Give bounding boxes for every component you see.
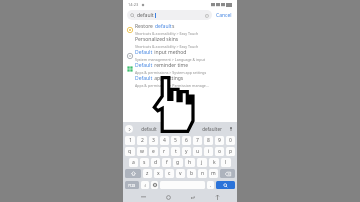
button[interactable]: i xyxy=(204,147,213,156)
staticText: d xyxy=(154,159,158,166)
staticText: Cancel xyxy=(216,12,232,19)
staticText: u xyxy=(196,148,200,155)
button[interactable]: p xyxy=(226,147,235,156)
button[interactable]: e xyxy=(149,147,158,156)
staticText: Restore xyxy=(135,23,155,30)
staticText: l xyxy=(225,159,227,166)
button[interactable]: d xyxy=(151,158,160,167)
staticText: 5 xyxy=(174,137,177,144)
button[interactable]: 7 xyxy=(193,136,202,145)
button[interactable]: Clear xyxy=(204,13,209,18)
button[interactable]: u xyxy=(193,147,202,156)
button[interactable]: v xyxy=(176,169,185,178)
button[interactable]: Search xyxy=(216,181,235,189)
staticText: 9 xyxy=(218,137,221,144)
staticText: v xyxy=(179,170,182,177)
staticText: s xyxy=(172,23,175,30)
button[interactable]: o xyxy=(215,147,224,156)
staticText: 14:23 xyxy=(128,2,139,7)
staticText: 6 xyxy=(185,137,188,144)
button[interactable]: 9 xyxy=(215,136,224,145)
staticText: n xyxy=(201,170,205,177)
button[interactable]: Back xyxy=(187,192,197,202)
button[interactable]: 0 xyxy=(226,136,235,145)
button[interactable]: ?123 xyxy=(125,181,139,189)
button[interactable]: y xyxy=(182,147,191,156)
button[interactable]: f xyxy=(162,158,171,167)
staticText: z xyxy=(146,170,149,177)
staticText: y xyxy=(185,148,188,155)
staticText: default xyxy=(141,126,157,132)
button[interactable]: q xyxy=(125,147,135,156)
button[interactable]: a xyxy=(129,158,138,167)
staticText: defaults xyxy=(172,126,190,132)
button[interactable]: 6 xyxy=(182,136,191,145)
button[interactable]: Home xyxy=(163,192,173,202)
staticText: System management > Language & input xyxy=(135,57,206,62)
staticText: default xyxy=(137,12,154,19)
button[interactable]: m xyxy=(209,169,218,178)
staticText: c xyxy=(168,170,171,177)
staticText: 3 xyxy=(152,137,155,144)
button[interactable]: z xyxy=(143,169,152,178)
button[interactable]: Cancel xyxy=(215,10,233,21)
staticText: 7 xyxy=(196,137,199,144)
button[interactable]: w xyxy=(137,147,147,156)
button[interactable]: . xyxy=(207,181,214,189)
button[interactable]: Language xyxy=(151,181,158,189)
button[interactable]: default xyxy=(127,10,212,20)
staticText: o xyxy=(218,148,222,155)
staticText: Apps & permissions > Permission manage..… xyxy=(135,83,209,88)
button[interactable]: 2 xyxy=(137,136,147,145)
button[interactable]: Default xyxy=(123,62,237,75)
staticText: reminder time xyxy=(153,62,188,69)
staticText: i xyxy=(208,148,210,155)
button[interactable]: s xyxy=(140,158,149,167)
button[interactable]: 5 xyxy=(171,136,180,145)
button[interactable]: 3 xyxy=(149,136,158,145)
button[interactable]: c xyxy=(165,169,174,178)
staticText: j xyxy=(201,159,203,166)
button[interactable]: 4 xyxy=(160,136,169,145)
button[interactable]: r xyxy=(160,147,169,156)
staticText: input method xyxy=(153,49,187,56)
staticText: defaulter xyxy=(202,126,222,132)
button[interactable]: x xyxy=(154,169,163,178)
staticText: Shortcuts & accessibility > Easy Touch xyxy=(135,31,199,36)
button[interactable]: defaulter xyxy=(196,126,227,132)
staticText: m xyxy=(211,170,216,177)
staticText: r xyxy=(163,148,166,155)
button[interactable]: Hide keyboard xyxy=(138,192,148,202)
button[interactable]: 8 xyxy=(204,136,213,145)
button[interactable]: Personalized skins xyxy=(123,36,237,49)
button[interactable]: k xyxy=(209,158,219,167)
button[interactable]: t xyxy=(171,147,180,156)
staticText: ?123 xyxy=(128,183,136,188)
button[interactable]: n xyxy=(198,169,207,178)
button[interactable]: defaults xyxy=(165,126,196,132)
button[interactable]: Default xyxy=(123,49,237,62)
button[interactable]: More suggestions xyxy=(125,125,133,133)
button[interactable]: Shift xyxy=(125,169,141,178)
staticText: p xyxy=(229,148,233,155)
button[interactable]: Restore xyxy=(123,23,237,36)
button[interactable]: default xyxy=(133,126,165,132)
button[interactable]: l xyxy=(221,158,231,167)
button[interactable]: Voice input xyxy=(227,125,235,133)
button[interactable]: j xyxy=(197,158,207,167)
button[interactable]: g xyxy=(173,158,183,167)
button[interactable]: h xyxy=(185,158,195,167)
staticText: s xyxy=(143,159,146,166)
staticText: k xyxy=(213,159,216,166)
button[interactable]: Emoji xyxy=(141,181,149,189)
staticText: q xyxy=(128,148,132,155)
staticText: 4 xyxy=(163,137,166,144)
button[interactable]: Backspace xyxy=(220,169,235,178)
button[interactable]: b xyxy=(187,169,196,178)
staticText: b xyxy=(190,170,194,177)
staticText: :) xyxy=(144,183,146,188)
button[interactable]: Pin xyxy=(212,192,222,202)
button[interactable]: 1 xyxy=(125,136,135,145)
button[interactable]: Default xyxy=(123,75,237,88)
